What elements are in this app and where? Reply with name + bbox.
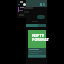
staticText: NIFTY FORMAT bbox=[32, 33, 49, 42]
